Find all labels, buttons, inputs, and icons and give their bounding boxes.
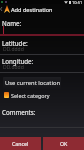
staticText: Name: bbox=[2, 19, 22, 27]
staticText: Select category bbox=[11, 92, 50, 99]
staticText: Cancel bbox=[12, 140, 29, 147]
staticText: Add destination bbox=[11, 6, 53, 14]
button[interactable]: Use current location bbox=[3, 77, 61, 89]
staticText: OK bbox=[60, 140, 68, 147]
button[interactable]: Select category bbox=[0, 90, 84, 100]
staticText: DD.dddd bbox=[3, 46, 24, 53]
staticText: Longitude: bbox=[2, 57, 34, 65]
staticText: Latitude: bbox=[2, 39, 28, 47]
button[interactable]: OK bbox=[43, 137, 84, 150]
staticText: 10:51 bbox=[72, 0, 83, 4]
staticText: Comments: bbox=[2, 108, 36, 116]
staticText: Use current location bbox=[5, 79, 60, 87]
staticText: DD.dddd bbox=[3, 64, 24, 71]
button[interactable]: Navigate up bbox=[0, 4, 10, 14]
button[interactable]: Cancel bbox=[0, 137, 41, 150]
